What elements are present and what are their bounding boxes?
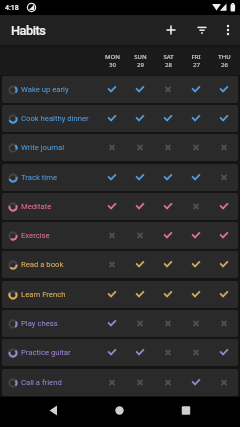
staticText: FRI: [191, 53, 201, 61]
button[interactable]: [182, 369, 210, 396]
button[interactable]: [126, 310, 154, 337]
button[interactable]: Read a book: [2, 251, 238, 278]
button[interactable]: [126, 222, 154, 249]
button[interactable]: [154, 369, 182, 396]
button[interactable]: [98, 134, 126, 161]
button[interactable]: [154, 134, 182, 161]
button[interactable]: [154, 310, 182, 337]
button[interactable]: [126, 281, 154, 308]
button[interactable]: [154, 281, 182, 308]
button[interactable]: Call a friend: [2, 369, 238, 396]
staticText: 29: [137, 61, 144, 69]
button[interactable]: [216, 15, 240, 45]
staticText: Call a friend: [21, 378, 62, 387]
button[interactable]: Cook healthy dinner: [2, 105, 238, 132]
staticText: Learn French: [21, 290, 66, 299]
button[interactable]: [210, 193, 238, 220]
staticText: 4:18: [5, 4, 19, 12]
button[interactable]: [98, 222, 126, 249]
staticText: Read a book: [21, 260, 64, 269]
button[interactable]: [182, 281, 210, 308]
button[interactable]: [126, 339, 154, 366]
button[interactable]: [154, 193, 182, 220]
staticText: SUN: [134, 53, 147, 61]
button[interactable]: [126, 164, 154, 191]
staticText: 28: [165, 61, 172, 69]
button[interactable]: [210, 281, 238, 308]
staticText: Track time: [21, 173, 57, 182]
button[interactable]: Write journal: [2, 134, 238, 161]
staticText: 26: [221, 61, 228, 69]
button[interactable]: [126, 105, 154, 132]
button[interactable]: [182, 105, 210, 132]
staticText: Write journal: [21, 143, 65, 152]
button[interactable]: [98, 339, 126, 366]
button[interactable]: [98, 251, 126, 278]
button[interactable]: [210, 310, 238, 337]
button[interactable]: [98, 310, 126, 337]
button[interactable]: [182, 339, 210, 366]
button[interactable]: [154, 164, 182, 191]
button[interactable]: [98, 369, 126, 396]
button[interactable]: Play chess: [2, 310, 238, 337]
button[interactable]: [182, 193, 210, 220]
staticText: Cook healthy dinner: [21, 114, 89, 123]
button[interactable]: [182, 222, 210, 249]
button[interactable]: [0, 397, 80, 427]
button[interactable]: [182, 310, 210, 337]
button[interactable]: [210, 339, 238, 366]
staticText: Practice guitar: [21, 348, 71, 357]
staticText: 27: [193, 61, 200, 69]
staticText: MON: [105, 53, 120, 61]
button[interactable]: [210, 369, 238, 396]
button[interactable]: [210, 105, 238, 132]
button[interactable]: [210, 134, 238, 161]
button[interactable]: [98, 105, 126, 132]
button[interactable]: [182, 164, 210, 191]
staticText: Wake up early: [21, 85, 69, 94]
button[interactable]: [182, 134, 210, 161]
staticText: Play chess: [21, 319, 58, 328]
staticText: THU: [218, 53, 231, 61]
button[interactable]: [154, 76, 182, 103]
staticText: Meditate: [21, 202, 52, 211]
button[interactable]: [126, 251, 154, 278]
staticText: Exercise: [21, 231, 50, 240]
button[interactable]: [98, 281, 126, 308]
button[interactable]: Practice guitar: [2, 339, 238, 366]
button[interactable]: [80, 397, 160, 427]
button[interactable]: Learn French: [2, 281, 238, 308]
button[interactable]: [154, 251, 182, 278]
button[interactable]: [154, 15, 188, 45]
button[interactable]: Exercise: [2, 222, 238, 249]
button[interactable]: Track time: [2, 164, 238, 191]
button[interactable]: [154, 222, 182, 249]
button[interactable]: [210, 76, 238, 103]
staticText: SAT: [163, 53, 174, 61]
button[interactable]: [160, 397, 240, 427]
button[interactable]: [98, 164, 126, 191]
button[interactable]: [154, 339, 182, 366]
button[interactable]: Wake up early: [2, 76, 238, 103]
button[interactable]: [210, 164, 238, 191]
button[interactable]: [182, 76, 210, 103]
button[interactable]: [98, 193, 126, 220]
button[interactable]: [182, 251, 210, 278]
button[interactable]: [126, 76, 154, 103]
button[interactable]: Meditate: [2, 193, 238, 220]
button[interactable]: [126, 369, 154, 396]
button[interactable]: [98, 76, 126, 103]
button[interactable]: [126, 193, 154, 220]
button[interactable]: [188, 15, 216, 45]
button[interactable]: [126, 134, 154, 161]
staticText: 30: [109, 61, 116, 69]
button[interactable]: [210, 251, 238, 278]
button[interactable]: [210, 222, 238, 249]
button[interactable]: [154, 105, 182, 132]
staticText: Habits: [11, 23, 46, 38]
